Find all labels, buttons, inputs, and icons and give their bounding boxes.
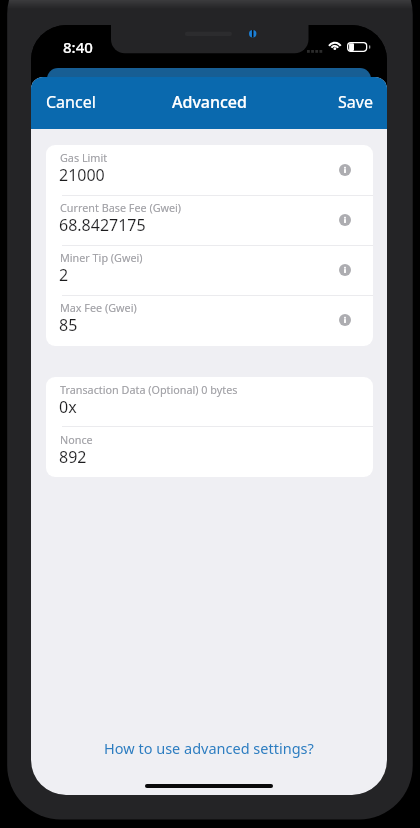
staticText: 68.8427175 xyxy=(59,214,146,236)
staticText: Nonce xyxy=(60,432,93,447)
button[interactable]: How to use advanced settings? xyxy=(31,734,387,761)
button[interactable]: Max Fee (Gwei) xyxy=(46,295,373,345)
button[interactable]: Current Base Fee (Gwei) xyxy=(46,195,373,245)
staticText: Save xyxy=(338,91,373,113)
button[interactable]: Miner Tip (Gwei) xyxy=(46,245,373,295)
button[interactable]: Save xyxy=(326,80,387,126)
staticText: How to use advanced settings? xyxy=(104,738,314,758)
staticText: Gas Limit xyxy=(60,150,108,165)
staticText: Miner Tip (Gwei) xyxy=(60,250,143,265)
staticText: 85 xyxy=(59,314,78,336)
staticText: Current Base Fee (Gwei) xyxy=(60,200,182,215)
button[interactable]: Info xyxy=(339,314,351,326)
button[interactable]: Info xyxy=(339,214,351,226)
button[interactable]: Info xyxy=(339,264,351,276)
staticText: Max Fee (Gwei) xyxy=(60,300,137,315)
staticText: Cancel xyxy=(46,91,96,113)
button[interactable]: Cancel xyxy=(31,80,108,126)
button[interactable]: Transaction Data (Optional) 0 bytes xyxy=(46,377,373,427)
button[interactable]: Nonce xyxy=(46,427,373,477)
staticText: 21000 xyxy=(59,164,105,186)
staticText: 0x xyxy=(59,396,77,418)
staticText: Transaction Data (Optional) 0 bytes xyxy=(60,382,238,397)
staticText: 892 xyxy=(59,446,87,468)
staticText: Advanced xyxy=(172,91,247,113)
button[interactable]: Info xyxy=(339,164,351,176)
staticText: 8:40 xyxy=(63,37,93,57)
button[interactable]: Gas Limit xyxy=(46,145,373,195)
staticText: 2 xyxy=(59,264,69,286)
